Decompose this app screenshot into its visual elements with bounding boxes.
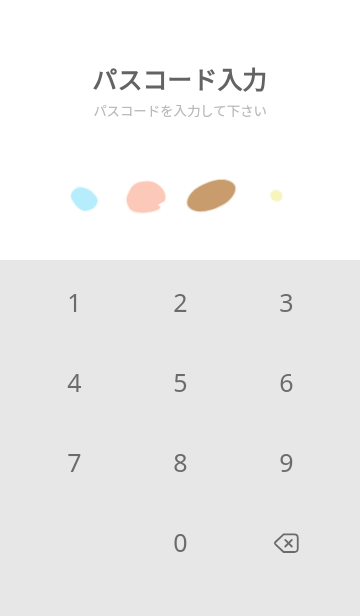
staticText: 3: [279, 285, 294, 319]
button[interactable]: 0: [127, 502, 233, 582]
staticText: 6: [279, 365, 294, 399]
staticText: 1: [67, 285, 82, 319]
button[interactable]: 7: [21, 422, 127, 502]
staticText: 9: [279, 445, 294, 479]
staticText: パスコードを入力して下さい: [93, 100, 267, 119]
button[interactable]: 2: [127, 262, 233, 342]
button[interactable]: 9: [233, 422, 339, 502]
button[interactable]: 5: [127, 342, 233, 422]
staticText: 7: [67, 445, 82, 479]
button[interactable]: Delete: [233, 502, 339, 582]
button[interactable]: 3: [233, 262, 339, 342]
staticText: 4: [67, 365, 82, 399]
button[interactable]: 1: [21, 262, 127, 342]
staticText: 5: [173, 365, 188, 399]
staticText: パスコード入力: [92, 60, 268, 96]
button[interactable]: 8: [127, 422, 233, 502]
staticText: 2: [173, 285, 188, 319]
staticText: 0: [173, 525, 188, 559]
other: Passcode entry indicators: [0, 0, 360, 260]
button[interactable]: 6: [233, 342, 339, 422]
button[interactable]: 4: [21, 342, 127, 422]
staticText: 8: [173, 445, 188, 479]
